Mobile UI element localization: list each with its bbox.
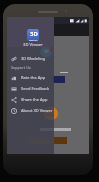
staticText: Rate the App xyxy=(21,75,46,80)
button[interactable] xyxy=(53,76,65,83)
staticText: About 3D Viewer xyxy=(21,108,53,113)
staticText: 3D xyxy=(30,30,38,38)
button[interactable]: Send Feedback xyxy=(7,83,54,94)
button[interactable]: Share the App xyxy=(7,94,54,105)
staticText: VIEWER xyxy=(29,38,38,41)
button[interactable] xyxy=(28,137,67,144)
button[interactable]: Rate the App xyxy=(7,72,54,83)
staticText: 3D Viewer xyxy=(23,42,43,48)
button[interactable]: 3D Modeling xyxy=(7,53,54,64)
staticText: Share the App xyxy=(21,97,48,102)
staticText: 3D Modeling xyxy=(21,56,46,61)
staticText: Send Feedback xyxy=(21,86,50,91)
button[interactable]: About 3D Viewer xyxy=(7,105,54,116)
staticText: Support Us xyxy=(11,65,31,70)
